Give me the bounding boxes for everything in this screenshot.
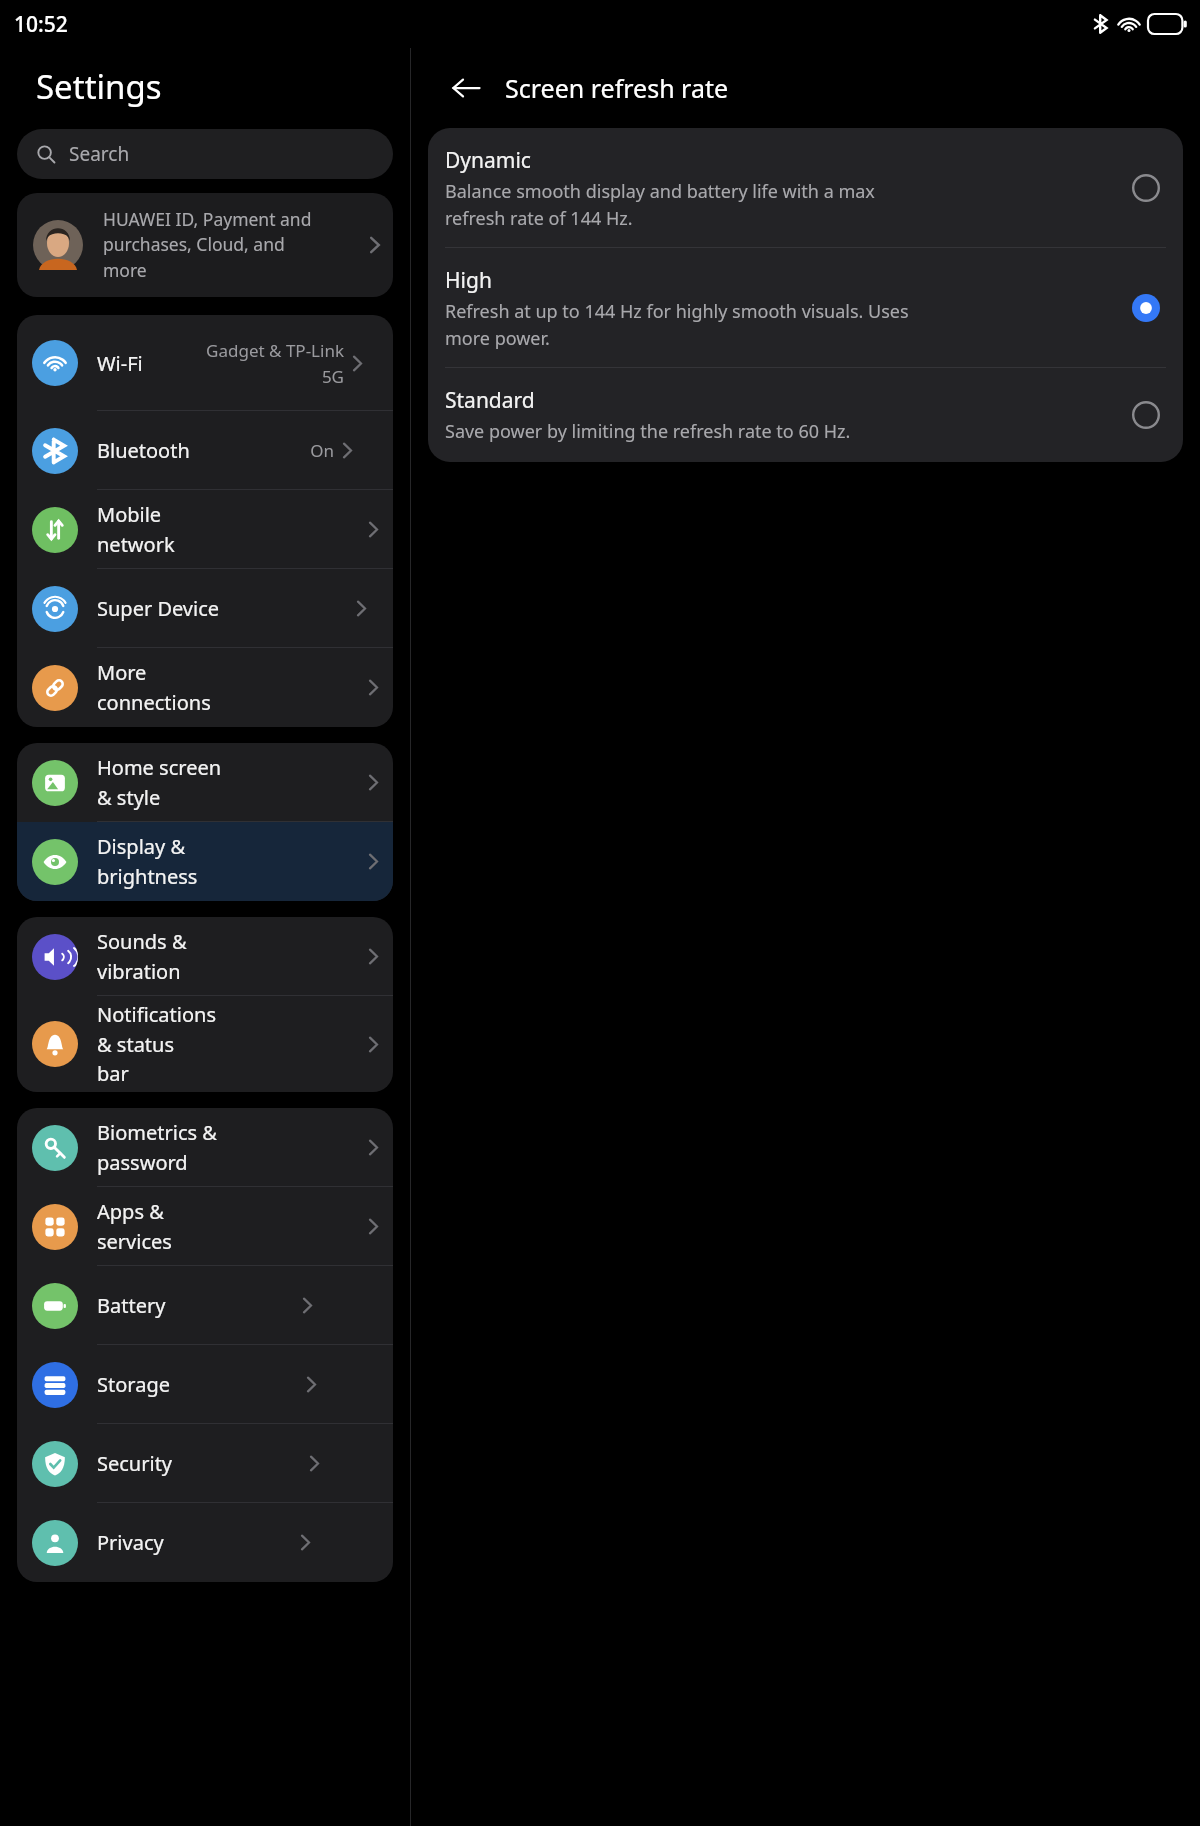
- staticText: Dynamic: [445, 146, 531, 175]
- staticText: Apps & services: [97, 1198, 232, 1255]
- button[interactable]: Sounds & vibration: [17, 917, 393, 996]
- staticText: On: [310, 439, 334, 462]
- button[interactable]: Back: [441, 63, 491, 113]
- button[interactable]: More connections: [17, 648, 393, 727]
- button[interactable]: Privacy: [17, 1503, 393, 1582]
- button[interactable]: Biometrics & password: [17, 1108, 393, 1187]
- button[interactable]: Super Device: [17, 569, 393, 648]
- button[interactable]: Bluetooth: [17, 411, 393, 490]
- button[interactable]: Battery: [17, 1266, 393, 1345]
- staticText: Search: [69, 141, 130, 167]
- staticText: HUAWEI ID, Payment and purchases, Cloud,…: [103, 207, 369, 283]
- button[interactable]: Dynamic: [428, 128, 1183, 248]
- button[interactable]: High: [428, 248, 1183, 368]
- staticText: Privacy: [97, 1529, 164, 1556]
- staticText: Bluetooth: [97, 437, 190, 464]
- staticText: Display & brightness: [97, 833, 232, 890]
- button[interactable]: Apps & services: [17, 1187, 393, 1266]
- staticText: Biometrics & password: [97, 1119, 232, 1176]
- button[interactable]: HUAWEI ID, Payment and purchases, Cloud,…: [17, 193, 393, 297]
- button[interactable]: Display & brightness: [17, 822, 393, 901]
- staticText: Notifications & status bar: [97, 1001, 232, 1087]
- staticText: 10:52: [14, 10, 68, 39]
- button[interactable]: Notifications & status bar: [17, 996, 393, 1092]
- staticText: Screen refresh rate: [505, 71, 729, 105]
- button[interactable]: Storage: [17, 1345, 393, 1424]
- button[interactable]: Dynamic: [1129, 171, 1163, 205]
- staticText: High: [445, 266, 492, 295]
- button[interactable]: Wi-Fi: [17, 315, 393, 411]
- staticText: Storage: [97, 1371, 170, 1398]
- staticText: Security: [97, 1450, 173, 1477]
- button[interactable]: Mobile network: [17, 490, 393, 569]
- staticText: Refresh at up to 144 Hz for highly smoot…: [445, 299, 909, 350]
- staticText: Save power by limiting the refresh rate …: [445, 419, 851, 444]
- staticText: Wi-Fi: [97, 350, 143, 377]
- button[interactable]: Standard: [428, 368, 1183, 462]
- button[interactable]: Home screen & style: [17, 743, 393, 822]
- staticText: Mobile network: [97, 501, 232, 558]
- staticText: Sounds & vibration: [97, 928, 232, 985]
- button[interactable]: Standard: [1129, 398, 1163, 432]
- button[interactable]: Search: [17, 129, 393, 179]
- staticText: Balance smooth display and battery life …: [445, 179, 875, 230]
- button[interactable]: High: [1129, 291, 1163, 325]
- staticText: Gadget & TP-Link 5G: [206, 339, 344, 388]
- button[interactable]: Security: [17, 1424, 393, 1503]
- staticText: Settings: [36, 64, 162, 109]
- staticText: Super Device: [97, 595, 220, 622]
- staticText: Home screen & style: [97, 754, 232, 811]
- staticText: Standard: [445, 386, 535, 415]
- staticText: Battery: [97, 1292, 166, 1319]
- staticText: More connections: [97, 659, 232, 716]
